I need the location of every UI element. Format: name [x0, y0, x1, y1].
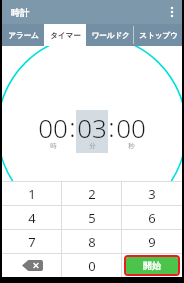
staticText: 時 — [50, 142, 57, 150]
staticText: 開始 — [143, 260, 161, 271]
staticText: タイマー — [50, 31, 81, 40]
button[interactable]: 開始 — [126, 257, 178, 274]
button[interactable]: 5 — [62, 206, 122, 229]
staticText: 6 — [148, 209, 156, 227]
button[interactable]: 6 — [122, 206, 182, 229]
staticText: 00 — [116, 110, 146, 145]
staticText: : — [69, 109, 76, 144]
staticText: 4 — [28, 209, 36, 227]
staticText: 00 — [38, 110, 68, 145]
staticText: 0 — [88, 257, 96, 275]
staticText: : — [108, 109, 115, 144]
button[interactable]: アラーム — [2, 24, 44, 46]
button[interactable]: 2 — [62, 182, 122, 205]
staticText: 5 — [88, 209, 96, 227]
button[interactable]: 7 — [2, 230, 62, 253]
button[interactable]: 00 — [116, 110, 146, 153]
button[interactable]: ストップウ — [134, 24, 182, 46]
staticText: 秒 — [128, 142, 135, 150]
button[interactable]: タイマー — [44, 24, 86, 46]
button[interactable]: More options — [162, 0, 182, 24]
button[interactable]: 4 — [2, 206, 62, 229]
staticText: アラーム — [8, 31, 39, 40]
button[interactable]: ワールドク — [86, 24, 134, 46]
button[interactable]: 9 — [122, 230, 182, 253]
button[interactable]: 03 — [77, 110, 107, 153]
staticText: 7 — [28, 233, 36, 251]
staticText: 分 — [89, 142, 96, 150]
button[interactable]: 3 — [122, 182, 182, 205]
button[interactable]: 8 — [62, 230, 122, 253]
button[interactable]: Backspace — [2, 254, 62, 277]
button[interactable]: 0 — [62, 254, 122, 277]
button[interactable]: 00 — [38, 110, 68, 153]
staticText: 3 — [148, 185, 156, 203]
staticText: 8 — [88, 233, 96, 251]
staticText: 2 — [88, 185, 96, 203]
staticText: 時計 — [11, 7, 29, 18]
staticText: ストップウ — [139, 31, 178, 40]
button[interactable]: 1 — [2, 182, 62, 205]
staticText: ワールドク — [91, 31, 130, 40]
staticText: 9 — [148, 233, 156, 251]
staticText: 03 — [77, 110, 107, 145]
staticText: 1 — [28, 185, 36, 203]
